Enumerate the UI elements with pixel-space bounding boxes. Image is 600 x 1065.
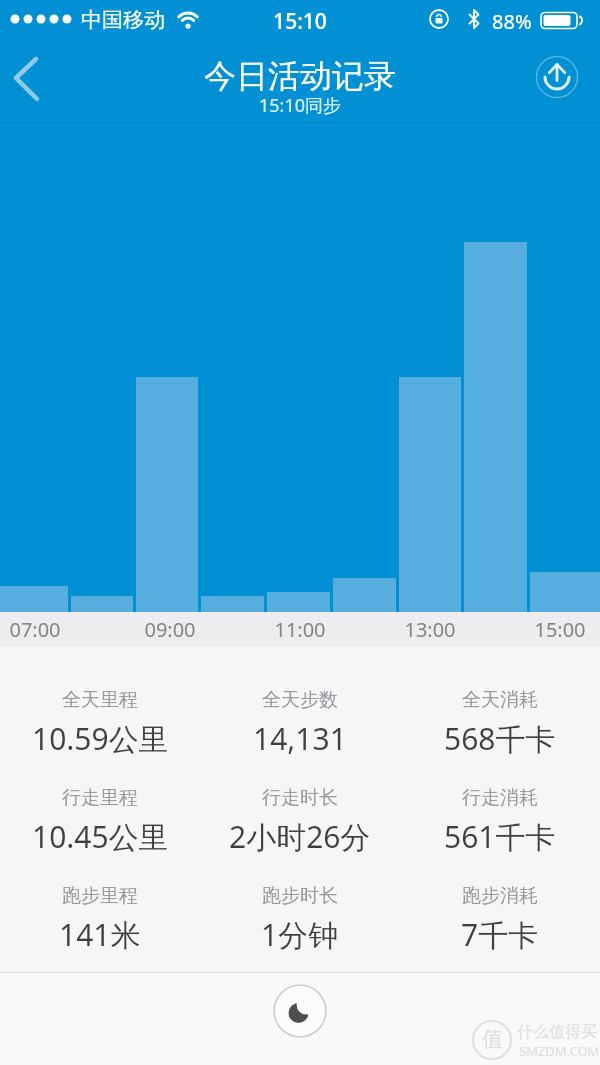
staticText: SMZDM.COM [519, 1042, 600, 1060]
staticText: 141米 [59, 914, 141, 955]
staticText: 7千卡 [461, 914, 539, 955]
staticText: 行走时长 [262, 786, 338, 810]
staticText: 值 [482, 1026, 503, 1052]
staticText: 全天消耗 [462, 688, 538, 712]
staticText: 行走里程 [62, 786, 138, 810]
staticText: 15:00 [515, 616, 600, 643]
staticText: 全天步数 [262, 688, 338, 712]
staticText: 10.45公里 [32, 816, 169, 857]
staticText: 07:00 [0, 616, 80, 643]
staticText: 15:10同步 [0, 93, 600, 118]
staticText: 09:00 [125, 616, 215, 643]
staticText: 14,131 [253, 718, 347, 759]
staticText: 跑步里程 [62, 884, 138, 908]
staticText: 跑步消耗 [462, 884, 538, 908]
staticText: 什么值得买 [517, 1022, 597, 1042]
staticText: 561千卡 [444, 816, 556, 857]
button[interactable] [0, 48, 60, 110]
staticText: 全天里程 [62, 688, 138, 712]
staticText: 10.59公里 [32, 718, 169, 759]
staticText: 行走消耗 [462, 786, 538, 810]
staticText: 今日活动记录 [0, 56, 600, 96]
staticText: 568千卡 [444, 718, 556, 759]
button[interactable] [273, 984, 327, 1038]
button[interactable] [530, 50, 584, 104]
staticText: 15:10 [0, 7, 600, 36]
staticText: 13:00 [385, 616, 475, 643]
staticText: 中国移动 [81, 7, 165, 33]
staticText: 11:00 [255, 616, 345, 643]
staticText: 跑步时长 [262, 884, 338, 908]
staticText: 1分钟 [261, 914, 339, 955]
staticText: 2小时26分 [229, 816, 371, 857]
staticText: 88% [492, 8, 532, 35]
